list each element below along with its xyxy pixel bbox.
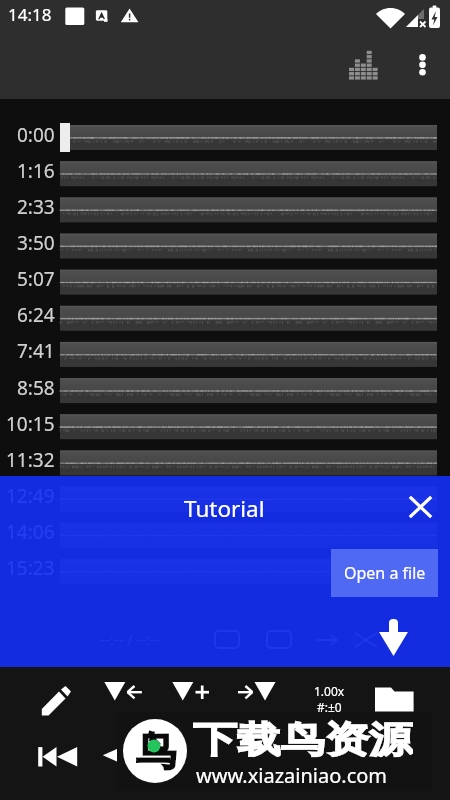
button[interactable]: Open a file (331, 549, 438, 597)
staticText: 7:41 (17, 338, 55, 364)
staticText: 1.00x (314, 683, 345, 699)
staticText: 14:06 (6, 519, 55, 545)
staticText: 5:07 (17, 266, 55, 292)
staticText: 12:49 (6, 483, 55, 509)
staticText: 6:24 (17, 302, 55, 328)
staticText: 11:32 (6, 447, 55, 473)
button[interactable]: Select to left (100, 676, 146, 722)
staticText: 3:50 (17, 230, 55, 256)
staticText: Tutorial (184, 493, 265, 524)
button[interactable]: Equalizer (336, 38, 388, 90)
staticText: Open a file (344, 562, 426, 584)
button[interactable]: Close (397, 483, 444, 530)
staticText: 0:00 (17, 122, 55, 148)
button[interactable]: Rewind (98, 743, 132, 777)
staticText: 下载鸟资源 (193, 718, 413, 757)
button[interactable]: Open folder (372, 678, 418, 724)
staticText: 1:16 (17, 158, 55, 184)
staticText: #:±0 (317, 699, 342, 715)
button[interactable]: Skip previous (32, 741, 84, 793)
button[interactable]: Edit (40, 680, 80, 720)
staticText: www.xiazainiao.com (196, 762, 388, 789)
staticText: 10:15 (6, 411, 55, 437)
button[interactable]: More options (399, 41, 446, 88)
staticText: 14:18 (8, 3, 52, 26)
staticText: 鸟 (136, 726, 176, 776)
button[interactable]: Add marker (168, 676, 214, 722)
button[interactable]: 1.00x (303, 682, 355, 716)
staticText: 2:33 (17, 194, 55, 220)
staticText: 8:58 (17, 375, 55, 401)
button[interactable]: Select to right (236, 676, 282, 722)
staticText: 15:23 (6, 555, 55, 581)
